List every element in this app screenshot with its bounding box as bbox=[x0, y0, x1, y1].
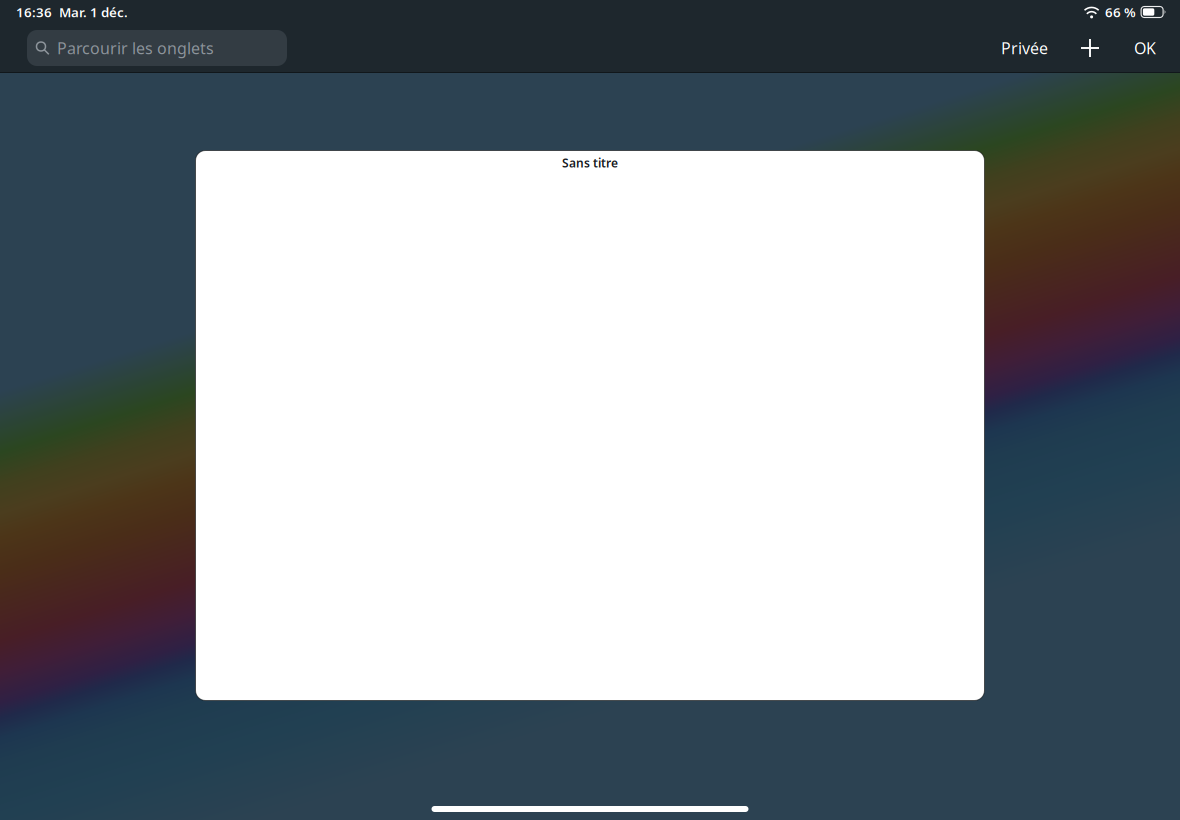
staticText: Sans titre bbox=[562, 155, 618, 171]
staticText: OK bbox=[1134, 37, 1156, 59]
staticText: Privée bbox=[1001, 37, 1048, 59]
staticText: 66 % bbox=[1105, 3, 1136, 21]
button[interactable]: Nouvel onglet bbox=[1070, 28, 1110, 68]
button[interactable]: Sans titre bbox=[195, 150, 984, 700]
button[interactable]: OK bbox=[1128, 28, 1162, 68]
button[interactable]: Privée bbox=[993, 28, 1056, 68]
button[interactable]: Parcourir les onglets bbox=[27, 30, 287, 66]
staticText: Mar. 1 déc. bbox=[59, 3, 128, 21]
staticText: Parcourir les onglets bbox=[57, 37, 214, 59]
staticText: 16:36 bbox=[16, 3, 52, 21]
